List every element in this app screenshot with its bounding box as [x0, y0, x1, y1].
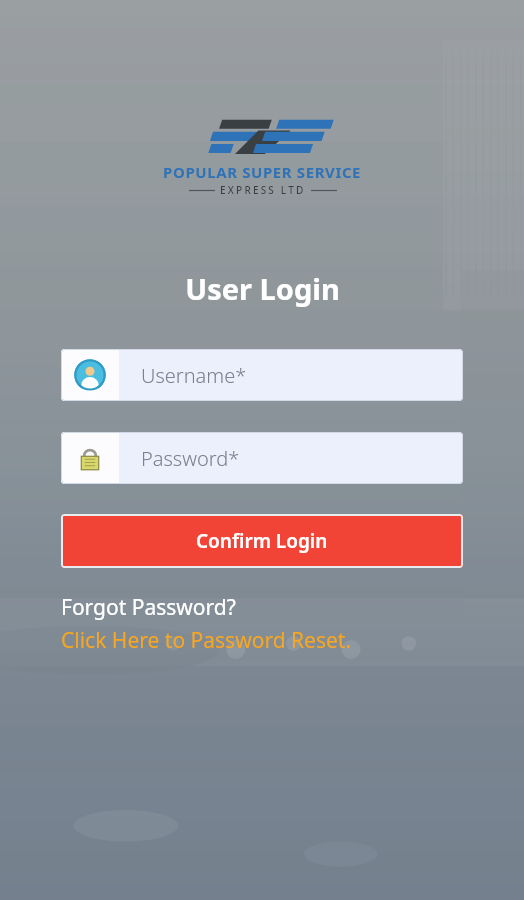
staticText: Forgot Password? [61, 593, 236, 622]
staticText: Password* [141, 445, 240, 472]
button[interactable]: Password* [61, 432, 463, 484]
staticText: Username* [141, 362, 247, 389]
staticText: Click Here to Password Reset. [61, 626, 352, 655]
staticText: POPULAR SUPER SERVICE [163, 162, 362, 182]
button[interactable]: Click Here to Password Reset. [61, 626, 352, 655]
staticText: User Login [185, 269, 340, 308]
button[interactable]: Confirm Login [61, 514, 463, 568]
button[interactable]: Username* [61, 349, 463, 401]
staticText: Confirm Login [196, 528, 328, 554]
staticText: EXPRESS LTD [220, 183, 306, 197]
